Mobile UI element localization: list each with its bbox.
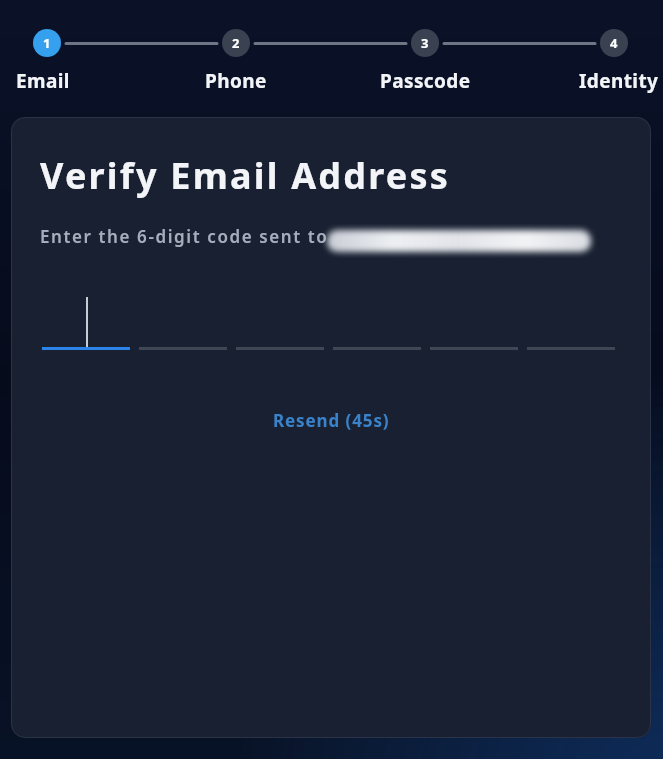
- staticText: Phone: [205, 68, 267, 94]
- button[interactable]: 4: [554, 29, 663, 95]
- staticText: Passcode: [380, 68, 471, 94]
- button[interactable]: 1: [0, 29, 107, 95]
- button[interactable]: 3: [365, 29, 485, 95]
- staticText: Enter the 6-digit code sent to: [40, 225, 329, 248]
- button[interactable]: [430, 298, 518, 350]
- button[interactable]: 2: [176, 29, 296, 95]
- staticText: 2: [232, 34, 240, 52]
- staticText: 4: [610, 34, 618, 52]
- staticText: 1: [43, 34, 51, 52]
- button[interactable]: [139, 298, 227, 350]
- staticText: 3: [421, 34, 429, 52]
- staticText: Identity: [579, 68, 659, 94]
- staticText: Verify Email Address: [40, 151, 450, 200]
- button[interactable]: Resend (45s): [265, 405, 398, 436]
- staticText: Resend (45s): [273, 409, 390, 432]
- staticText: Email: [16, 68, 70, 94]
- button[interactable]: [527, 298, 615, 350]
- button[interactable]: [236, 298, 324, 350]
- button[interactable]: [333, 298, 421, 350]
- button[interactable]: [42, 298, 130, 350]
